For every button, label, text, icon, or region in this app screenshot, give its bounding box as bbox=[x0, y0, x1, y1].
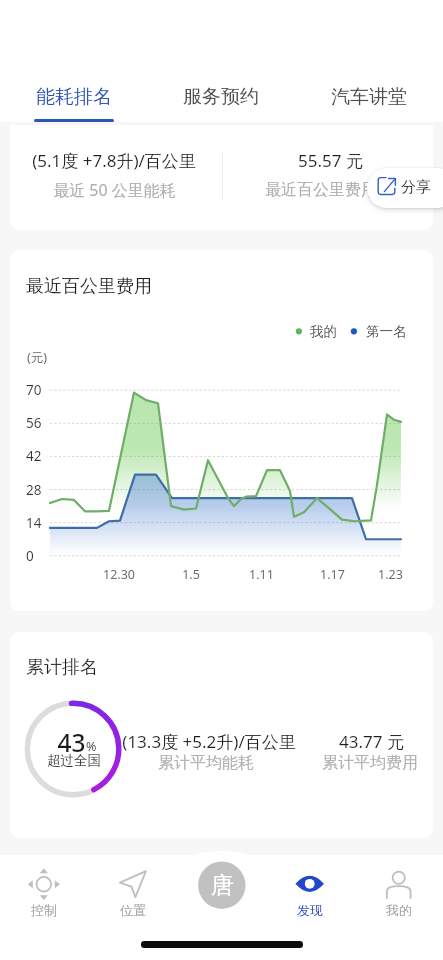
staticText: 43 bbox=[57, 726, 86, 759]
staticText: 发现 bbox=[297, 902, 323, 918]
staticText: 42 bbox=[26, 447, 42, 465]
staticText: 28 bbox=[26, 481, 42, 499]
staticText: 1.5 bbox=[182, 566, 200, 583]
staticText: 能耗排名 bbox=[36, 85, 112, 109]
staticText: 70 bbox=[26, 381, 42, 399]
staticText: 我的 bbox=[310, 323, 337, 340]
button[interactable]: 能耗排名 bbox=[0, 74, 147, 119]
button[interactable]: 我的 bbox=[355, 855, 443, 925]
staticText: 55.57 元 bbox=[298, 149, 363, 172]
staticText: (13.3度 +5.2升)/百公里 bbox=[122, 730, 296, 753]
staticText: 汽车讲堂 bbox=[331, 85, 407, 109]
staticText: 最近百公里费用 bbox=[26, 275, 152, 298]
staticText: 0 bbox=[26, 547, 34, 565]
staticText: 累计排名 bbox=[26, 656, 98, 679]
staticText: 位置 bbox=[120, 902, 146, 918]
button[interactable]: 控制 bbox=[0, 855, 88, 925]
button[interactable]: 分享 bbox=[367, 168, 443, 208]
staticText: 1.17 bbox=[320, 566, 345, 583]
staticText: 控制 bbox=[31, 902, 57, 918]
staticText: 超过全国 bbox=[47, 752, 101, 769]
staticText: 最近 50 公里能耗 bbox=[53, 179, 176, 201]
button[interactable]: 发现 bbox=[266, 855, 354, 925]
staticText: (5.1度 +7.8升)/百公里 bbox=[32, 149, 196, 172]
staticText: 服务预约 bbox=[183, 85, 259, 109]
staticText: 14 bbox=[26, 514, 42, 532]
button[interactable]: 服务预约 bbox=[147, 74, 295, 119]
staticText: 1.11 bbox=[249, 566, 274, 583]
staticText: 56 bbox=[26, 414, 42, 432]
staticText: 第一名 bbox=[366, 323, 407, 340]
button[interactable]: 汽车讲堂 bbox=[295, 74, 443, 119]
staticText: 43.77 元 bbox=[339, 730, 404, 753]
staticText: 累计平均能耗 bbox=[158, 753, 254, 773]
staticText: 12.30 bbox=[103, 566, 135, 583]
staticText: 1.23 bbox=[378, 566, 403, 583]
button[interactable]: 唐 bbox=[178, 855, 266, 925]
staticText: 最近百公里费用 bbox=[265, 180, 377, 200]
staticText: 我的 bbox=[386, 902, 412, 918]
staticText: 唐 bbox=[211, 871, 234, 900]
staticText: % bbox=[86, 738, 97, 755]
staticText: 累计平均费用 bbox=[322, 753, 418, 773]
staticText: 分享 bbox=[401, 178, 431, 197]
button[interactable]: 位置 bbox=[89, 855, 177, 925]
staticText: (元) bbox=[27, 349, 48, 366]
